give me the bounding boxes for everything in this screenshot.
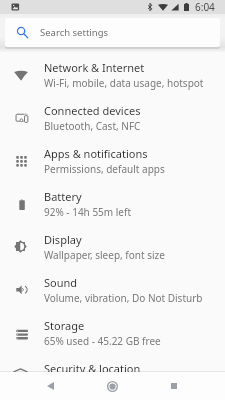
staticText: 65% used - 45.22 GB free xyxy=(44,334,161,348)
staticText: Search settings xyxy=(40,26,109,39)
staticText: Connected devices xyxy=(44,103,141,118)
staticText: Security & location xyxy=(44,361,141,376)
staticText: Wallpaper, sleep, font size xyxy=(44,248,165,262)
staticText: Storage xyxy=(44,318,85,333)
button[interactable]: Apps & notifications xyxy=(0,139,225,182)
staticText: Bluetooth, Cast, NFC xyxy=(44,119,141,133)
staticText: Wi-Fi, mobile, data usage, hotspot xyxy=(44,76,204,90)
button[interactable]: Storage xyxy=(0,311,225,354)
staticText: 6:04 xyxy=(195,0,215,14)
staticText: Permissions, default apps xyxy=(44,162,165,176)
button[interactable]: Search settings xyxy=(5,18,220,47)
button[interactable]: Network & Internet xyxy=(0,53,225,96)
staticText: Sound xyxy=(44,275,78,290)
button[interactable]: Recents xyxy=(160,372,187,400)
button[interactable]: Display xyxy=(0,225,225,268)
staticText: 92% - 14h 55m left xyxy=(44,205,132,219)
staticText: Battery xyxy=(44,189,82,204)
button[interactable]: Home xyxy=(99,372,126,400)
button[interactable]: Security & location xyxy=(0,354,225,397)
staticText: Apps & notifications xyxy=(44,146,148,161)
staticText: Network & Internet xyxy=(44,60,145,75)
staticText: Display xyxy=(44,232,82,247)
button[interactable]: Connected devices xyxy=(0,96,225,139)
button[interactable]: Sound xyxy=(0,268,225,311)
button[interactable]: Back xyxy=(37,372,64,400)
button[interactable]: Battery xyxy=(0,182,225,225)
staticText: Screen lock, fingerprint xyxy=(44,377,154,391)
staticText: Volume, vibration, Do Not Disturb xyxy=(44,291,203,305)
